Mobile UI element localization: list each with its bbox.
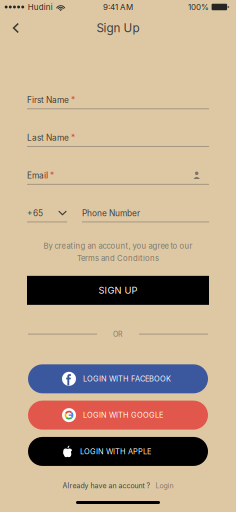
staticText: 100%: [188, 2, 209, 12]
staticText: Terms and Conditions: [77, 254, 159, 263]
staticText: By creating an account, you agree to our: [43, 241, 192, 251]
staticText: Login: [155, 481, 173, 490]
staticText: LOGIN WITH FACEBOOK: [83, 374, 171, 383]
staticText: First Name: [27, 95, 69, 105]
staticText: Already have an account ?: [62, 481, 150, 490]
staticText: Email: [27, 170, 48, 180]
button[interactable]: Back: [0, 16, 33, 40]
staticText: LOGIN WITH GOOGLE: [83, 411, 163, 420]
staticText: Hudini: [28, 2, 53, 12]
button[interactable]: Login: [150, 481, 173, 490]
staticText: *: [69, 133, 75, 143]
staticText: LOGIN WITH APPLE: [80, 447, 151, 456]
staticText: *: [48, 170, 54, 180]
staticText: *: [69, 95, 75, 105]
staticText: Sign Up: [96, 21, 139, 35]
button[interactable]: +65: [27, 208, 67, 219]
staticText: SIGN UP: [98, 285, 137, 296]
staticText: Last Name: [27, 133, 69, 143]
button[interactable]: SIGN UP: [27, 276, 209, 305]
staticText: +65: [27, 208, 43, 218]
button[interactable]: LOGIN WITH GOOGLE: [28, 401, 208, 430]
staticText: 9:41 AM: [103, 2, 133, 12]
button[interactable]: LOGIN WITH APPLE: [28, 437, 208, 466]
button[interactable]: LOGIN WITH FACEBOOK: [28, 364, 208, 393]
staticText: OR: [113, 330, 123, 338]
staticText: Phone Number: [82, 208, 140, 218]
